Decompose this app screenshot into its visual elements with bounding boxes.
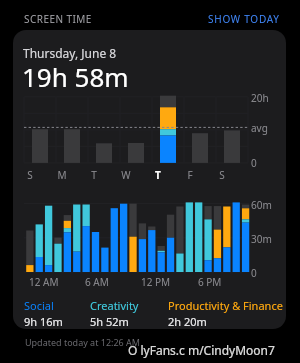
staticText: 0 bbox=[251, 266, 257, 280]
button[interactable]: SCREEN TIME bbox=[24, 12, 92, 26]
staticText: 20h bbox=[251, 91, 269, 105]
staticText: 6 AM bbox=[85, 275, 109, 289]
staticText: avg bbox=[251, 121, 268, 135]
staticText: O lyFans.c m/CindyMoon7 bbox=[128, 342, 275, 358]
staticText: T bbox=[84, 168, 104, 182]
staticText: 19h 58m bbox=[22, 59, 129, 94]
staticText: 5h 52m bbox=[90, 314, 129, 329]
staticText: M bbox=[52, 168, 72, 182]
staticText: W bbox=[116, 168, 136, 182]
staticText: 30m bbox=[251, 232, 272, 246]
staticText: Productivity & Finance bbox=[168, 298, 283, 313]
button[interactable]: Productivity & Finance bbox=[168, 298, 283, 329]
staticText: Creativity bbox=[90, 298, 139, 313]
staticText: 2h 20m bbox=[168, 314, 207, 329]
staticText: 12 PM bbox=[141, 275, 171, 289]
staticText: Thursday, June 8 bbox=[23, 45, 117, 61]
button[interactable]: SHOW TODAY bbox=[208, 12, 280, 26]
staticText: 12 AM bbox=[29, 275, 59, 289]
button[interactable]: Social bbox=[24, 298, 63, 329]
staticText: 0 bbox=[251, 156, 257, 170]
staticText: Updated today at 12:26 AM bbox=[25, 336, 141, 348]
staticText: S bbox=[212, 168, 232, 182]
staticText: T bbox=[148, 168, 168, 182]
staticText: 60m bbox=[251, 198, 272, 212]
staticText: Social bbox=[24, 298, 54, 313]
staticText: 6 PM bbox=[198, 275, 222, 289]
staticText: F bbox=[180, 168, 200, 182]
staticText: 9h 16m bbox=[24, 314, 63, 329]
button[interactable]: Creativity bbox=[90, 298, 139, 329]
button[interactable] bbox=[13, 30, 286, 329]
staticText: S bbox=[20, 168, 40, 182]
staticText: SHOW TODAY bbox=[208, 12, 280, 26]
staticText: SCREEN TIME bbox=[24, 12, 92, 26]
